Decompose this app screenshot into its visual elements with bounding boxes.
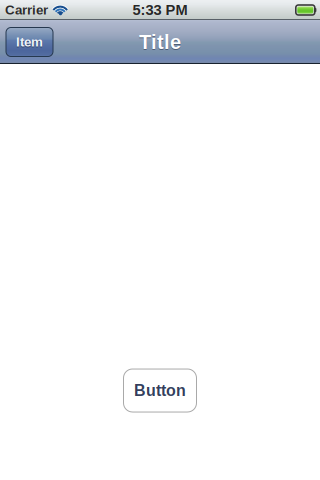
staticText: Carrier	[5, 3, 48, 17]
staticText: Title	[139, 31, 181, 53]
button[interactable]: Button	[123, 369, 196, 412]
staticText: Button	[134, 382, 186, 399]
button[interactable]: Item	[6, 27, 53, 56]
staticText: Item	[16, 35, 43, 49]
staticText: 5:33 PM	[132, 2, 187, 18]
staticText: Title	[139, 32, 181, 54]
staticText: Item	[16, 36, 43, 50]
